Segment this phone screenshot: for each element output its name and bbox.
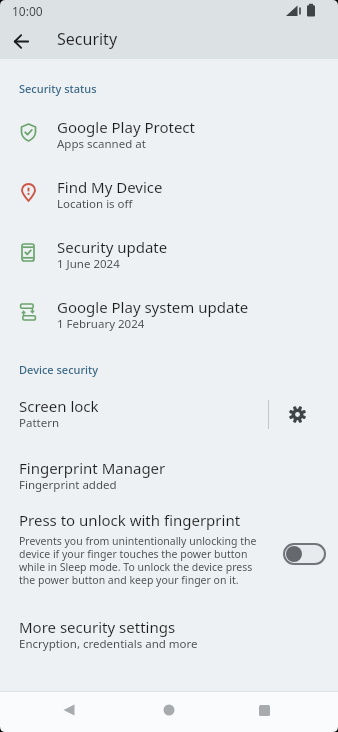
staticText: More security settings [19,617,176,637]
button[interactable]: Screen lock [0,390,338,442]
staticText: Find My Device [57,177,163,197]
staticText: Press to unlock with fingerprint [19,510,241,530]
staticText: Prevents you from unintentionally unlock… [19,534,257,587]
staticText: Encryption, credentials and more [19,636,198,652]
staticText: Pattern [19,415,60,431]
button[interactable] [283,543,326,565]
staticText: Security [57,28,118,50]
button[interactable]: Fingerprint Manager [0,458,338,494]
staticText: 1 February 2024 [57,316,145,332]
staticText: Location is off [57,196,133,212]
staticText: Security update [57,237,168,257]
staticText: Device security [19,362,99,377]
staticText: Apps scanned at [57,136,146,152]
button[interactable]: Google Play Protect [0,106,338,166]
button[interactable]: Find My Device [0,166,338,226]
staticText: Google Play system update [57,297,249,317]
staticText: 10:00 [12,3,43,19]
button[interactable] [240,692,288,732]
staticText: 1 June 2024 [57,256,120,272]
staticText: Fingerprint added [19,477,117,493]
button[interactable]: More security settings [0,617,338,653]
staticText: Screen lock [19,396,99,416]
button[interactable]: Press to unlock with fingerprint [0,510,338,587]
button[interactable] [7,27,35,55]
button[interactable] [145,692,193,732]
staticText: Google Play Protect [57,117,195,137]
staticText: Security status [19,81,97,96]
staticText: Fingerprint Manager [19,458,166,478]
button[interactable]: Google Play system update [0,286,338,346]
button[interactable] [45,692,93,732]
button[interactable] [269,390,326,442]
button[interactable]: Security update [0,226,338,286]
